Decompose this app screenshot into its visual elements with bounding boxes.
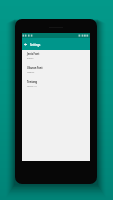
staticText: Version 1.0 [27, 85, 37, 88]
staticText: Tentang [27, 80, 38, 83]
staticText: Settings [30, 43, 41, 47]
staticText: Jenis Font [27, 52, 40, 55]
staticText: Medium [27, 71, 35, 74]
staticText: Roboto [27, 57, 34, 60]
button[interactable]: Ukuran Font [22, 64, 90, 78]
button[interactable]: Tentang [22, 78, 90, 92]
staticText: Ukuran Font [27, 66, 43, 69]
button[interactable]: Back [22, 39, 29, 50]
button[interactable]: Jenis Font [22, 50, 90, 64]
